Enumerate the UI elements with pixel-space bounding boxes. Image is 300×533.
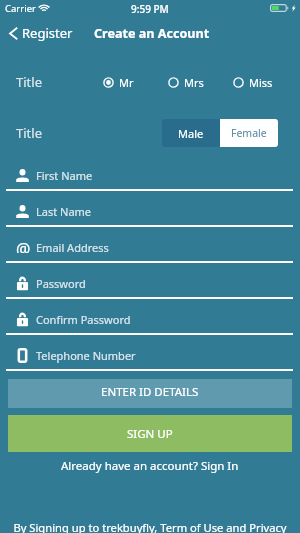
staticText: Register <box>22 24 73 42</box>
button[interactable]: Confirm Password <box>0 299 300 335</box>
staticText: Already have an account? Sign In <box>61 458 239 474</box>
button[interactable]: Female <box>220 119 278 147</box>
staticText: @ <box>16 238 31 253</box>
staticText: By Signing up to trekbuyfly, Term of Use… <box>0 520 300 533</box>
staticText: Mr <box>119 75 134 90</box>
button[interactable]: Last Name <box>0 191 300 227</box>
button[interactable]: Telephone Number <box>0 335 300 371</box>
button[interactable]: ENTER ID DETAILS <box>8 379 292 408</box>
staticText: Miss <box>249 75 273 90</box>
staticText: ENTER ID DETAILS <box>101 384 199 400</box>
button[interactable]: Mrs <box>168 67 204 97</box>
staticText: Male <box>178 126 204 141</box>
staticText: Email Address <box>36 240 109 255</box>
staticText: Carrier <box>5 2 36 15</box>
staticText: Telephone Number <box>36 348 136 363</box>
staticText: Title <box>16 124 42 142</box>
staticText: Last Name <box>36 204 92 219</box>
staticText: SIGN UP <box>127 426 173 442</box>
staticText: 9:59 PM <box>131 2 169 16</box>
button[interactable]: SIGN UP <box>8 415 292 452</box>
button[interactable]: Male <box>162 119 220 147</box>
button[interactable]: Miss <box>233 67 273 97</box>
other: Back <box>8 27 19 40</box>
staticText: Female <box>231 126 267 140</box>
button[interactable]: Mr <box>103 67 134 97</box>
staticText: Create an Account <box>94 25 210 42</box>
button[interactable]: @ <box>0 227 300 263</box>
staticText: Title <box>16 73 42 91</box>
button[interactable]: Already have an account? Sign In <box>0 455 300 477</box>
staticText: First Name <box>36 168 93 183</box>
button[interactable]: Back <box>8 24 73 42</box>
button[interactable]: Password <box>0 263 300 299</box>
staticText: Password <box>36 276 86 291</box>
button[interactable]: First Name <box>0 155 300 191</box>
staticText: Mrs <box>184 75 204 90</box>
staticText: Confirm Password <box>36 312 131 327</box>
